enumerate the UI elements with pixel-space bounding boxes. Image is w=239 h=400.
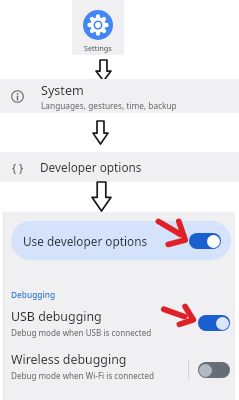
staticText: USB debugging (11, 308, 102, 325)
button[interactable]: Wireless debugging (4, 350, 235, 388)
button[interactable]: System (0, 79, 239, 113)
staticText: Debug mode when USB is connected (11, 327, 152, 338)
staticText: Developer options (40, 159, 142, 175)
staticText: Debug mode when Wi-Fi is connected (11, 370, 155, 381)
other: Annotation arrows (0, 0, 239, 400)
staticText: Languages, gestures, time, backup (41, 100, 177, 111)
button[interactable]: Settings (72, 0, 124, 55)
staticText: Settings (84, 43, 112, 53)
button[interactable]: Use developer options (11, 221, 231, 260)
staticText: Wireless debugging (11, 351, 127, 368)
staticText: Use developer options (23, 233, 148, 249)
staticText: Debugging (11, 289, 56, 300)
button[interactable]: USB debugging (4, 305, 235, 343)
staticText: { } (12, 160, 24, 175)
button[interactable]: { } (0, 152, 239, 182)
staticText: System (41, 82, 84, 99)
